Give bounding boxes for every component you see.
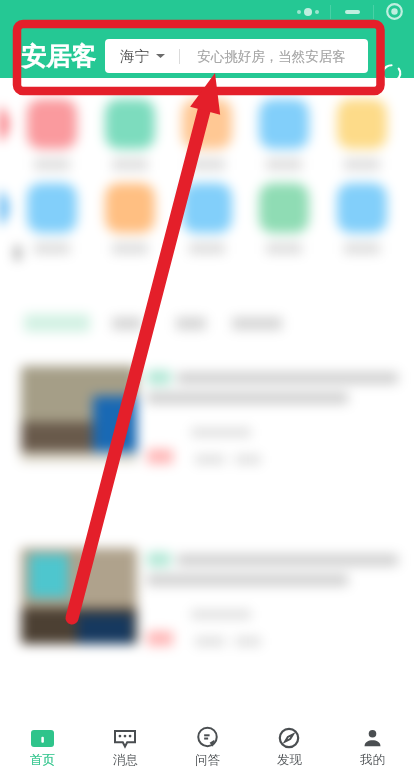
button[interactable]: 发现 bbox=[249, 716, 329, 772]
button[interactable] bbox=[112, 317, 142, 330]
button[interactable] bbox=[105, 99, 155, 170]
button[interactable]: 海宁 bbox=[105, 39, 368, 73]
button[interactable] bbox=[182, 99, 232, 170]
staticText: 安心挑好房，当然安居客 bbox=[197, 48, 346, 65]
button[interactable]: More bbox=[286, 1, 330, 22]
button[interactable] bbox=[27, 183, 77, 254]
staticText: 我的 bbox=[360, 752, 385, 768]
button[interactable] bbox=[232, 317, 282, 330]
button[interactable] bbox=[337, 183, 387, 254]
button[interactable] bbox=[0, 730, 414, 772]
button[interactable]: 安居客 bbox=[21, 41, 96, 72]
button[interactable]: 首页 bbox=[2, 716, 82, 772]
button[interactable]: 问答 bbox=[167, 716, 247, 772]
staticText: 发现 bbox=[277, 752, 302, 768]
staticText: 首页 bbox=[30, 752, 55, 768]
button[interactable] bbox=[24, 314, 90, 332]
staticText: 安居客 bbox=[21, 41, 96, 72]
button[interactable]: 我的 bbox=[332, 716, 412, 772]
button[interactable] bbox=[105, 183, 155, 254]
button[interactable] bbox=[259, 183, 309, 254]
button[interactable]: Messages bbox=[380, 63, 402, 85]
button[interactable] bbox=[27, 99, 77, 170]
button[interactable]: Minimize bbox=[331, 1, 373, 22]
button[interactable] bbox=[0, 366, 414, 464]
button[interactable] bbox=[182, 183, 232, 254]
button[interactable] bbox=[176, 317, 206, 330]
staticText: 消息 bbox=[113, 752, 138, 768]
button[interactable] bbox=[337, 99, 387, 170]
button[interactable]: Home bbox=[374, 1, 414, 22]
button[interactable] bbox=[0, 548, 414, 646]
staticText: 问答 bbox=[195, 752, 220, 768]
button[interactable] bbox=[259, 99, 309, 170]
staticText: 海宁 bbox=[120, 47, 149, 65]
button[interactable]: 消息 bbox=[85, 716, 165, 772]
